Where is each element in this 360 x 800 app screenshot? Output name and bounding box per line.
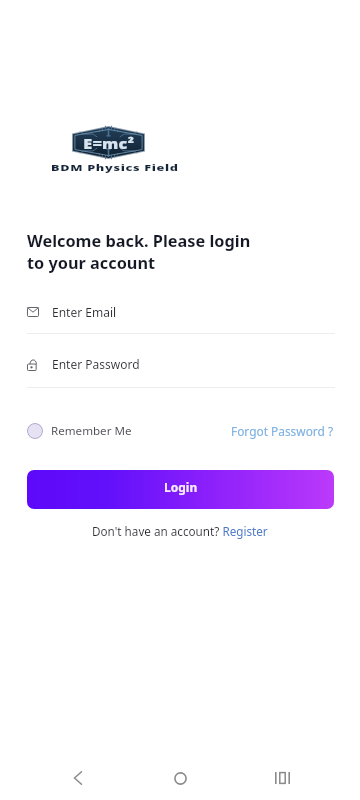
staticText: Login <box>164 479 198 495</box>
staticText: E=mc² <box>83 133 135 152</box>
button[interactable]: Home <box>156 756 204 800</box>
button[interactable]: Don't have an account? Register <box>92 523 268 539</box>
staticText: Enter Password <box>52 356 140 372</box>
staticText: BDM Physics Field <box>51 161 179 173</box>
staticText: Remember Me <box>51 423 132 439</box>
button[interactable]: Recent apps <box>258 756 306 800</box>
button[interactable]: Back <box>54 756 102 800</box>
button[interactable]: Enter Password <box>0 354 360 388</box>
staticText: Enter Email <box>52 304 117 320</box>
staticText: Welcome back. Please login to your accou… <box>27 230 251 274</box>
button[interactable]: Login <box>27 470 334 509</box>
button[interactable]: Enter Email <box>0 302 360 334</box>
button[interactable]: Forgot Password ? <box>231 423 334 439</box>
button[interactable]: Remember Me <box>27 423 132 439</box>
